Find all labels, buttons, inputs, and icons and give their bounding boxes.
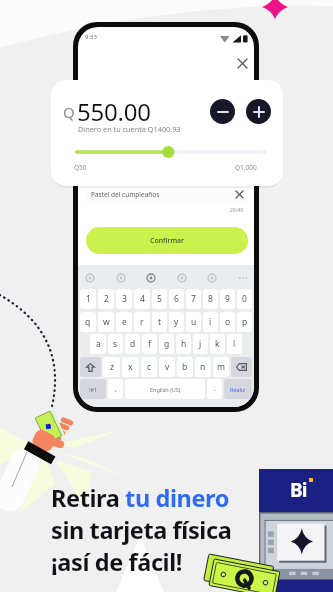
- button[interactable]: 6: [169, 289, 184, 309]
- staticText: g: [164, 338, 170, 350]
- staticText: 9: [225, 293, 230, 305]
- staticText: 20/40: [230, 207, 244, 214]
- button[interactable]: English (US): [125, 379, 205, 399]
- staticText: d: [130, 338, 136, 350]
- button[interactable]: Keyboard tool 3: [174, 270, 189, 285]
- staticText: u: [191, 316, 197, 328]
- staticText: .: [214, 384, 216, 394]
- staticText: q: [85, 316, 91, 328]
- button[interactable]: v: [159, 357, 175, 377]
- button[interactable]: 9: [220, 289, 235, 309]
- staticText: s: [113, 338, 118, 350]
- staticText: p: [242, 316, 248, 328]
- button[interactable]: 8: [203, 289, 218, 309]
- button[interactable]: k: [210, 334, 225, 354]
- button[interactable]: e: [116, 312, 132, 332]
- button[interactable]: d: [125, 334, 140, 354]
- staticText: l: [233, 338, 236, 350]
- button[interactable]: o: [220, 312, 235, 332]
- button[interactable]: z: [103, 357, 120, 377]
- button[interactable]: r: [134, 312, 150, 332]
- button[interactable]: n: [195, 357, 211, 377]
- button[interactable]: Confirmar: [86, 227, 248, 254]
- button[interactable]: Keyboard tool 4: [204, 270, 219, 285]
- button[interactable]: Decrease amount: [210, 99, 235, 124]
- button[interactable]: 7: [186, 289, 201, 309]
- staticText: 550.00: [77, 95, 151, 128]
- staticText: e: [122, 316, 127, 328]
- staticText: Pastel del cumpleaños: [91, 190, 160, 199]
- staticText: o: [225, 316, 231, 328]
- staticText: Q50: [74, 163, 87, 172]
- staticText: 2: [104, 293, 109, 305]
- staticText: 1: [86, 293, 91, 305]
- button[interactable]: ,: [108, 379, 123, 399]
- staticText: c: [147, 361, 152, 373]
- button[interactable]: Keyboard tool 5: [235, 270, 250, 285]
- button[interactable]: 2: [98, 289, 114, 309]
- button[interactable]: Pastel del cumpleaños: [86, 184, 248, 205]
- staticText: Retira tu dinero: [51, 482, 229, 514]
- staticText: ¡así de fácil!: [51, 546, 183, 578]
- button[interactable]: b: [177, 357, 193, 377]
- staticText: 5: [157, 293, 162, 305]
- staticText: i: [209, 316, 212, 328]
- staticText: !#1: [89, 386, 98, 393]
- button[interactable]: w: [98, 312, 114, 332]
- staticText: Confirmar: [150, 236, 185, 246]
- button[interactable]: 1: [80, 289, 96, 309]
- button[interactable]: Increase amount: [246, 99, 271, 124]
- staticText: 3: [122, 293, 127, 305]
- button[interactable]: f: [142, 334, 157, 354]
- staticText: Q1,000: [235, 163, 257, 172]
- button[interactable]: 3: [116, 289, 132, 309]
- button[interactable]: y: [169, 312, 184, 332]
- button[interactable]: x: [122, 357, 139, 377]
- button[interactable]: !#1: [80, 379, 106, 399]
- staticText: ,: [115, 384, 117, 394]
- staticText: 6: [174, 293, 179, 305]
- staticText: Realiz: [230, 386, 246, 393]
- staticText: t: [158, 316, 162, 328]
- staticText: z: [110, 361, 114, 373]
- staticText: w: [103, 316, 110, 328]
- button[interactable]: u: [186, 312, 201, 332]
- button[interactable]: Keyboard tool 2: [143, 270, 158, 285]
- staticText: n: [200, 361, 206, 373]
- staticText: b: [182, 361, 188, 373]
- staticText: 7: [191, 293, 196, 305]
- button[interactable]: Close: [233, 54, 251, 72]
- button[interactable]: 0: [237, 289, 252, 309]
- button[interactable]: i: [203, 312, 218, 332]
- button[interactable]: Realiz: [224, 379, 252, 399]
- button[interactable]: 4: [134, 289, 150, 309]
- button[interactable]: .: [207, 379, 222, 399]
- staticText: r: [140, 316, 144, 328]
- staticText: Bi: [290, 477, 307, 503]
- button[interactable]: h: [176, 334, 191, 354]
- button[interactable]: t: [152, 312, 167, 332]
- staticText: h: [181, 338, 187, 350]
- staticText: v: [165, 361, 170, 373]
- staticText: 0: [242, 293, 247, 305]
- staticText: Dinero en tu cuenta Q1400.93: [78, 124, 181, 134]
- button[interactable]: l: [227, 334, 242, 354]
- button[interactable]: Keyboard tool 0: [82, 270, 97, 285]
- button[interactable]: Shift: [80, 357, 101, 377]
- staticText: y: [174, 316, 179, 328]
- button[interactable]: 5: [152, 289, 167, 309]
- button[interactable]: s: [108, 334, 123, 354]
- button[interactable]: a: [90, 334, 106, 354]
- staticText: English (US): [150, 386, 181, 393]
- button[interactable]: q: [80, 312, 96, 332]
- button[interactable]: p: [237, 312, 252, 332]
- staticText: f: [148, 338, 151, 350]
- button[interactable]: Keyboard tool 1: [113, 270, 128, 285]
- button[interactable]: j: [193, 334, 208, 354]
- button[interactable]: g: [159, 334, 174, 354]
- button[interactable]: c: [141, 357, 157, 377]
- staticText: sin tarjeta física: [51, 514, 232, 546]
- button[interactable]: Backspace: [231, 357, 252, 377]
- staticText: Q: [63, 102, 75, 122]
- button[interactable]: m: [213, 357, 229, 377]
